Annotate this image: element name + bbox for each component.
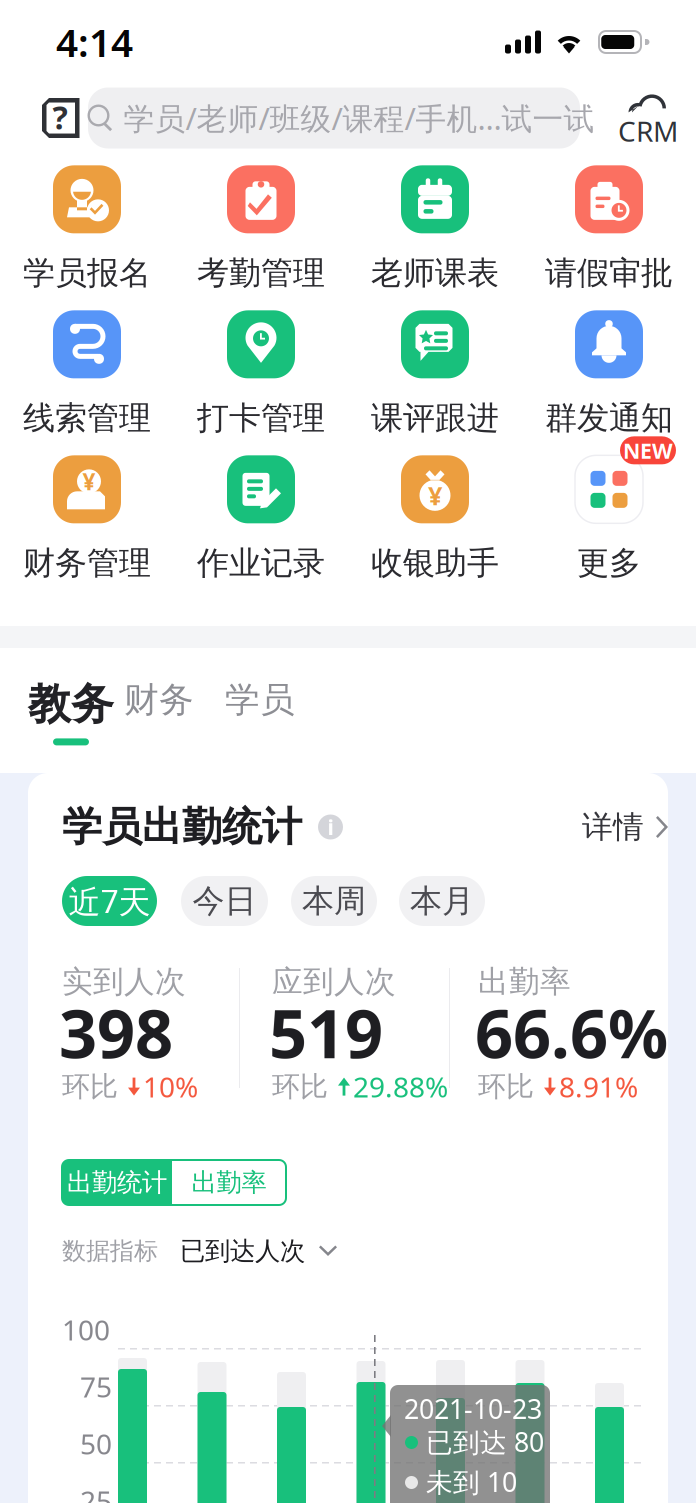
- staticText: 学员出勤统计: [62, 802, 302, 851]
- button[interactable]: 学员报名: [0, 168, 174, 290]
- button[interactable]: 本月: [399, 876, 485, 926]
- button[interactable]: 作业记录: [174, 458, 348, 580]
- staticText: ?: [52, 96, 67, 138]
- staticText: 环比: [478, 1069, 534, 1104]
- button[interactable]: NEW: [522, 458, 696, 580]
- staticText: 本周: [302, 881, 366, 921]
- staticText: 75: [80, 1368, 112, 1405]
- button[interactable]: 老师课表: [348, 168, 522, 290]
- button[interactable]: 打卡管理: [174, 313, 348, 435]
- staticText: 519: [269, 988, 383, 1076]
- staticText: 出勤率: [478, 963, 571, 1001]
- staticText: 本月: [410, 881, 474, 921]
- staticText: NEW: [623, 436, 673, 464]
- staticText: 4:14: [56, 16, 133, 68]
- staticText: CRM: [618, 112, 678, 150]
- staticText: 已到达 80: [426, 1424, 544, 1459]
- staticText: 未到 10: [426, 1464, 517, 1499]
- button[interactable]: 线索管理: [0, 313, 174, 435]
- staticText: 今日: [192, 881, 256, 921]
- button[interactable]: 教务: [34, 678, 108, 738]
- staticText: 66.6%: [475, 988, 668, 1076]
- staticText: 实到人次: [62, 963, 186, 1001]
- button[interactable]: 今日: [181, 876, 268, 926]
- staticText: 数据指标: [62, 1236, 158, 1266]
- button[interactable]: ¥: [0, 458, 174, 580]
- staticText: 出勤率: [191, 1167, 266, 1198]
- staticText: 环比: [62, 1069, 118, 1104]
- staticText: 29.88%: [353, 1068, 448, 1105]
- button[interactable]: 近7天: [62, 876, 157, 926]
- button[interactable]: 请假审批: [522, 168, 696, 290]
- staticText: 更多: [577, 543, 641, 583]
- staticText: 收银助手: [371, 543, 499, 583]
- button[interactable]: 考勤管理: [174, 168, 348, 290]
- button[interactable]: 学员/老师/班级/课程/手机…试一试: [88, 87, 580, 148]
- button[interactable]: 出勤统计: [62, 1160, 172, 1205]
- staticText: 考勤管理: [197, 253, 325, 293]
- staticText: 8.91%: [559, 1068, 638, 1105]
- staticText: 学员/老师/班级/课程/手机…试一试: [123, 98, 594, 138]
- button[interactable]: CRM: [612, 87, 684, 149]
- button[interactable]: 出勤率: [172, 1160, 286, 1205]
- staticText: 线索管理: [23, 398, 151, 438]
- staticText: 详情: [582, 808, 644, 846]
- staticText: 群发通知: [545, 398, 673, 438]
- staticText: 教务: [28, 678, 114, 730]
- button[interactable]: 群发通知: [522, 313, 696, 435]
- staticText: 2021-10-23: [404, 1391, 542, 1426]
- staticText: i: [327, 813, 333, 841]
- staticText: 财务: [124, 679, 194, 721]
- staticText: ¥: [428, 478, 442, 512]
- staticText: 398: [59, 988, 173, 1076]
- button[interactable]: ¥: [348, 458, 522, 580]
- staticText: 已到达人次: [180, 1235, 305, 1266]
- staticText: 财务管理: [23, 543, 151, 583]
- button[interactable]: 财务: [108, 678, 210, 722]
- staticText: 作业记录: [197, 543, 325, 583]
- button[interactable]: 详情: [556, 805, 668, 849]
- staticText: 10%: [143, 1068, 198, 1105]
- staticText: 近7天: [68, 880, 150, 922]
- button[interactable]: Help: [34, 87, 88, 149]
- staticText: 学员报名: [23, 253, 151, 293]
- staticText: 50: [80, 1425, 112, 1462]
- button[interactable]: 学员: [210, 678, 310, 722]
- staticText: 25: [80, 1482, 112, 1503]
- staticText: 学员: [225, 679, 295, 721]
- button[interactable]: 课评跟进: [348, 313, 522, 435]
- staticText: 请假审批: [545, 253, 673, 293]
- button[interactable]: 已到达人次: [180, 1231, 337, 1271]
- staticText: 课评跟进: [371, 398, 499, 438]
- staticText: 老师课表: [371, 253, 499, 293]
- staticText: 环比: [272, 1069, 328, 1104]
- staticText: 100: [62, 1311, 110, 1348]
- staticText: 出勤统计: [67, 1167, 167, 1198]
- staticText: ¥: [82, 466, 95, 496]
- staticText: 应到人次: [272, 963, 396, 1001]
- staticText: 打卡管理: [197, 398, 325, 438]
- button[interactable]: 本周: [291, 876, 377, 926]
